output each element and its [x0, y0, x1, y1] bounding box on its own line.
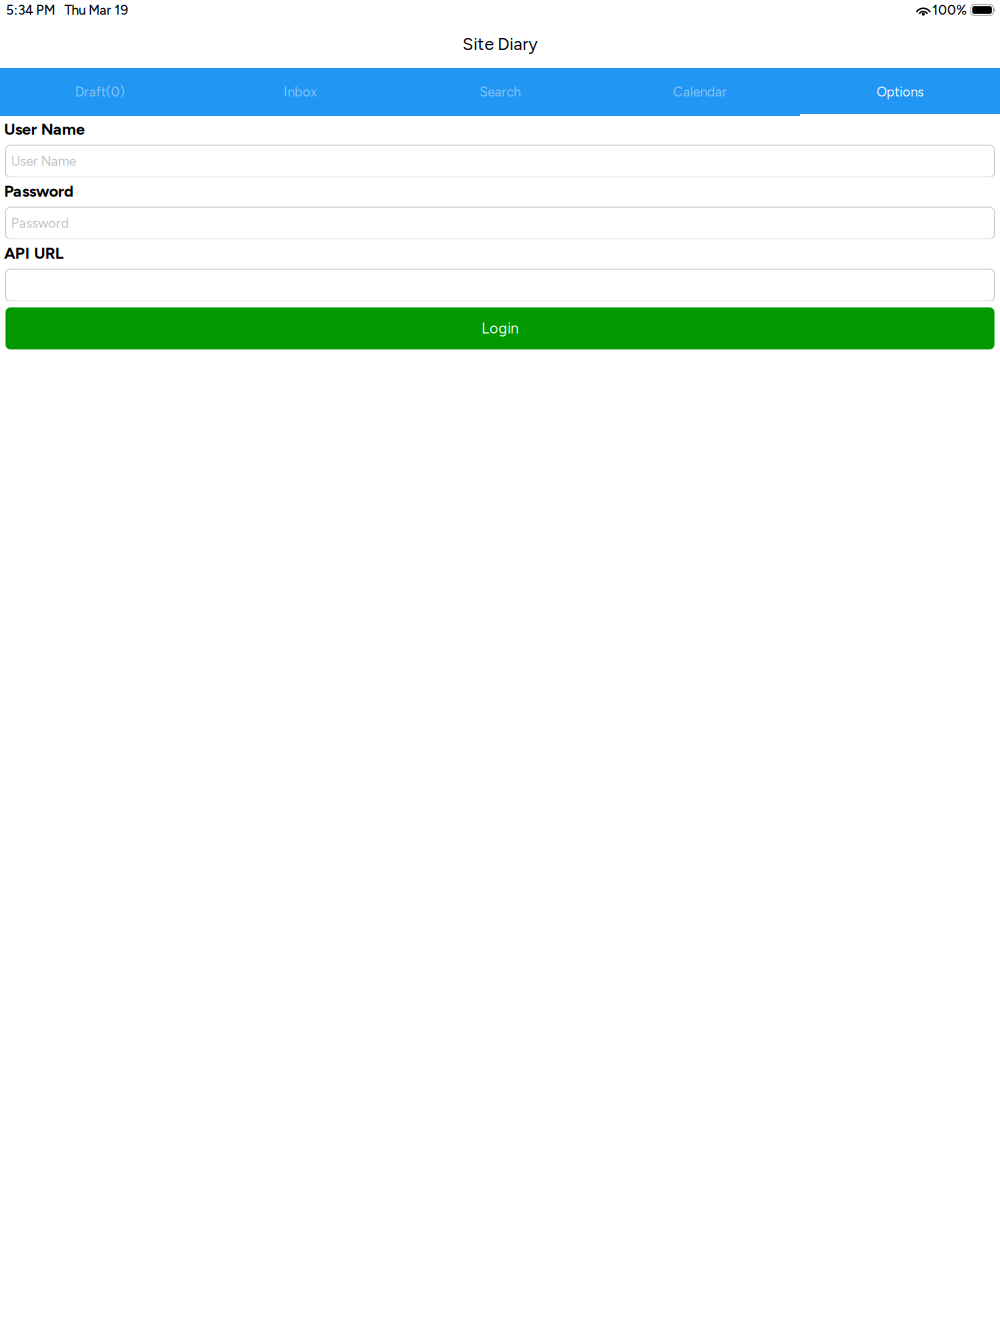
staticText: User Name	[11, 153, 76, 169]
staticText: API URL	[4, 244, 64, 263]
staticText: 5:34 PM	[6, 2, 55, 18]
staticText: Thu Mar 19	[64, 2, 128, 18]
staticText: Calendar	[673, 84, 727, 100]
staticText: Login	[481, 320, 518, 337]
button[interactable]: Inbox	[200, 68, 400, 116]
button[interactable]: Draft(0)	[0, 68, 200, 116]
staticText: Inbox	[283, 84, 316, 100]
staticText: User Name	[4, 120, 85, 139]
staticText: Options	[876, 84, 923, 100]
button[interactable]: Calendar	[600, 68, 800, 116]
staticText: Password	[11, 215, 69, 231]
staticText: Search	[479, 84, 520, 100]
staticText: 100%	[932, 2, 967, 18]
button[interactable]: Options	[800, 68, 1000, 116]
button[interactable]: Search	[400, 68, 600, 116]
button[interactable]: Login	[5, 307, 994, 349]
staticText: Password	[4, 182, 74, 201]
staticText: Site Diary	[462, 34, 537, 54]
staticText: Draft(0)	[75, 84, 125, 100]
